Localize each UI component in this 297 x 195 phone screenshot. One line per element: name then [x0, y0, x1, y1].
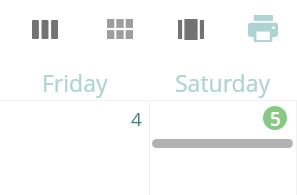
button[interactable]: Month view [98, 7, 142, 51]
button[interactable]: Print [241, 6, 285, 50]
button[interactable]: Saturday [149, 65, 297, 99]
button[interactable]: 5 [150, 101, 296, 195]
staticText: 5 [270, 106, 281, 130]
staticText: 4 [131, 106, 142, 132]
button[interactable]: 4 [0, 101, 149, 195]
button[interactable] [152, 139, 293, 148]
button[interactable]: Agenda view [169, 7, 213, 51]
button[interactable]: Day view [23, 7, 67, 51]
button[interactable]: Friday [0, 65, 149, 99]
staticText: Friday [42, 67, 108, 98]
staticText: Saturday [175, 67, 271, 98]
